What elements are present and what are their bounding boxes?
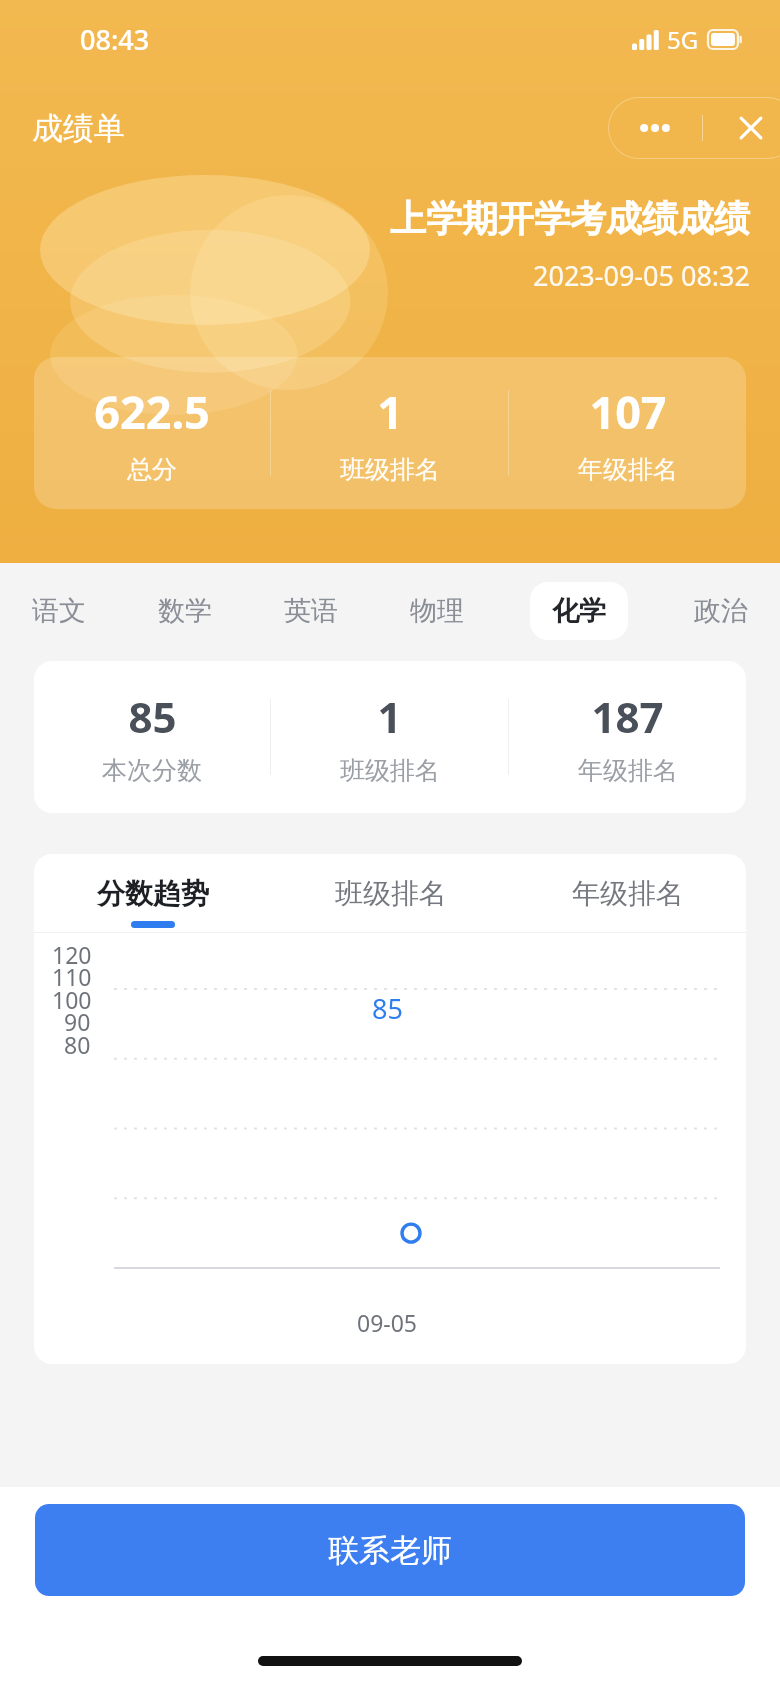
staticText: 1 (377, 381, 403, 442)
staticText: 语文 (32, 594, 86, 628)
staticText: 班级排名 (335, 876, 447, 911)
button[interactable]: More options (608, 97, 702, 159)
button[interactable]: 政治 (688, 582, 754, 640)
staticText: 班级排名 (340, 755, 440, 786)
button[interactable]: 化学 (530, 582, 628, 640)
staticText: 年级排名 (578, 454, 678, 485)
staticText: 物理 (410, 594, 464, 628)
staticText: 本次分数 (102, 755, 202, 786)
staticText: 成绩单 (32, 109, 125, 148)
staticText: 联系老师 (328, 1531, 452, 1570)
staticText: 622.5 (94, 381, 210, 442)
staticText: 187 (591, 688, 664, 745)
button[interactable]: 85 (34, 661, 746, 813)
staticText: 2023-09-05 08:32 (533, 257, 750, 294)
button[interactable]: 数学 (152, 582, 218, 640)
staticText: 85 (128, 688, 177, 745)
button[interactable]: 联系老师 (35, 1504, 745, 1596)
staticText: 年级排名 (572, 876, 684, 911)
button[interactable]: 年级排名 (509, 854, 746, 932)
staticText: 英语 (284, 594, 338, 628)
staticText: 107 (589, 381, 667, 442)
button[interactable]: Close (703, 97, 780, 159)
button[interactable]: 物理 (404, 582, 470, 640)
staticText: 90 (64, 1006, 91, 1037)
staticText: 年级排名 (578, 755, 678, 786)
staticText: 5G (667, 23, 699, 56)
staticText: 08:43 (80, 21, 150, 58)
staticText: 化学 (552, 594, 606, 628)
button[interactable]: 语文 (26, 582, 92, 640)
staticText: 1 (377, 688, 402, 745)
button[interactable]: 班级排名 (272, 854, 509, 932)
staticText: 120 (52, 939, 92, 970)
button[interactable]: 622.5 (34, 357, 746, 509)
button[interactable]: 分数趋势 (34, 854, 272, 932)
staticText: 上学期开学考成绩成绩 (390, 196, 750, 241)
staticText: 分数趋势 (97, 876, 209, 911)
staticText: 80 (64, 1029, 91, 1060)
staticText: 110 (52, 961, 92, 992)
staticText: 班级排名 (340, 454, 440, 485)
staticText: 政治 (694, 594, 748, 628)
staticText: 数学 (158, 594, 212, 628)
staticText: 总分 (127, 454, 177, 485)
staticText: 09-05 (357, 1307, 418, 1338)
button[interactable]: 英语 (278, 582, 344, 640)
staticText: 100 (52, 984, 92, 1015)
staticText: 85 (372, 990, 403, 1027)
